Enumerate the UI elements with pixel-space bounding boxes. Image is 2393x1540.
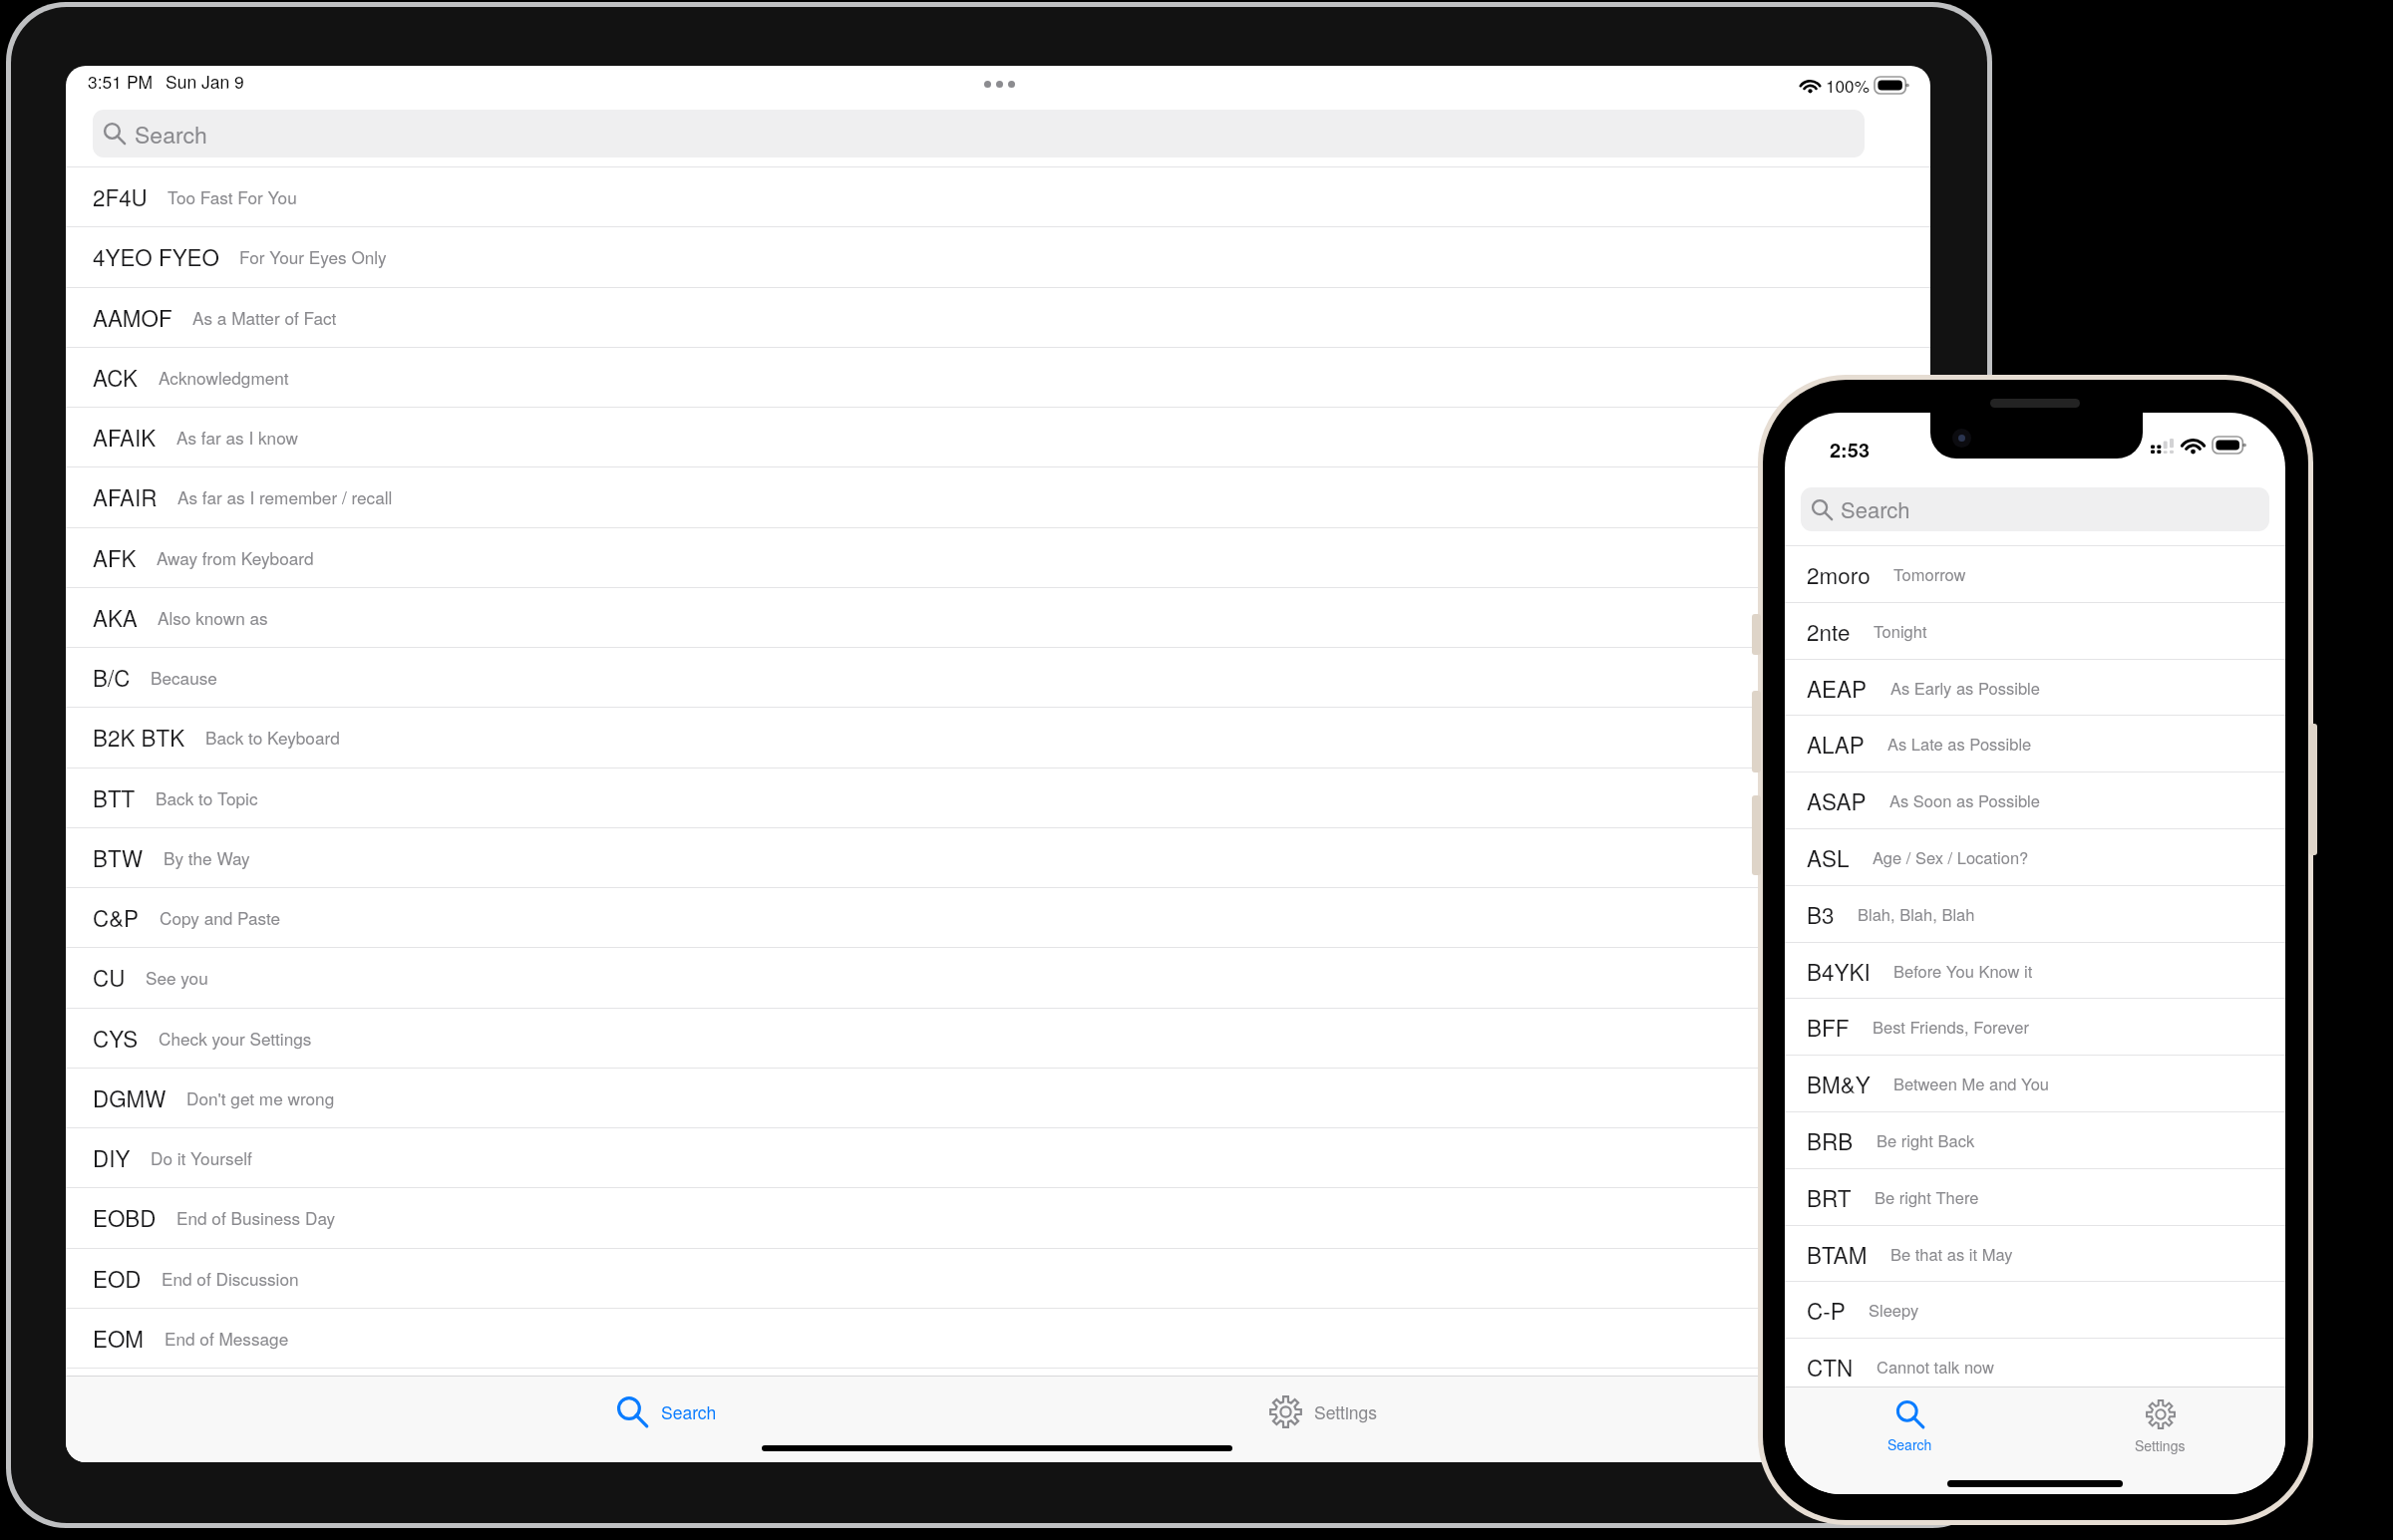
staticText: 2moro	[1807, 558, 1871, 590]
staticText: As Late as Possible	[1887, 732, 2032, 756]
button[interactable]: 2moro	[1785, 545, 2285, 602]
staticText: DGMW	[93, 1081, 167, 1113]
staticText: CYS	[93, 1022, 139, 1054]
button[interactable]: Search field	[1801, 487, 2269, 531]
staticText: Search	[135, 118, 207, 151]
staticText: Copy and Paste	[160, 905, 281, 930]
staticText: BM&Y	[1807, 1068, 1871, 1099]
staticText: B4YKI	[1807, 955, 1871, 987]
staticText: 2:53	[1830, 435, 1871, 463]
staticText: C&P	[93, 901, 140, 933]
button[interactable]: BRT	[1785, 1168, 2285, 1225]
button[interactable]: 4YEO FYEO	[66, 226, 1930, 286]
button[interactable]: AKA	[66, 587, 1930, 647]
button[interactable]: CTN	[1785, 1338, 2285, 1394]
button[interactable]: CU	[66, 947, 1930, 1007]
staticText: Tonight	[1874, 619, 1927, 643]
staticText: Away from Keyboard	[157, 545, 314, 570]
button[interactable]: BTT	[66, 768, 1930, 827]
button[interactable]: AFK	[66, 527, 1930, 587]
button[interactable]: BTW	[66, 827, 1930, 887]
staticText: EOD	[93, 1262, 142, 1294]
staticText: 100%	[1826, 73, 1870, 98]
staticText: Between Me and You	[1893, 1072, 2050, 1095]
button[interactable]: C-P	[1785, 1281, 2285, 1338]
staticText: Be right Back	[1877, 1128, 1975, 1152]
staticText: Too Fast For You	[168, 184, 297, 209]
button[interactable]: CYS	[66, 1008, 1930, 1068]
button[interactable]: ASAP	[1785, 771, 2285, 828]
staticText: BFF	[1807, 1011, 1850, 1043]
staticText: As Soon as Possible	[1889, 788, 2040, 812]
button[interactable]: AFAIR	[66, 466, 1930, 526]
button[interactable]: Settings	[2035, 1386, 2285, 1468]
button[interactable]: BTAM	[1785, 1225, 2285, 1282]
staticText: Be that as it May	[1890, 1242, 2013, 1266]
staticText: Because	[151, 665, 217, 690]
staticText: For Your Eyes Only	[239, 244, 387, 269]
staticText: ASL	[1807, 841, 1850, 873]
staticText: 2nte	[1807, 615, 1851, 647]
button[interactable]: B3	[1785, 885, 2285, 942]
staticText: AFK	[93, 541, 137, 573]
staticText: CTN	[1807, 1351, 1854, 1383]
staticText: AFAIK	[93, 421, 157, 453]
staticText: AKA	[93, 601, 138, 633]
staticText: Search	[1887, 1434, 1932, 1454]
button[interactable]: DIY	[66, 1127, 1930, 1187]
staticText: Do it Yourself	[151, 1145, 252, 1170]
staticText: Back to Topic	[156, 785, 258, 810]
button[interactable]: ASL	[1785, 828, 2285, 885]
staticText: 3:51 PM	[88, 69, 154, 94]
button[interactable]: Settings	[1229, 1378, 1459, 1441]
button[interactable]: EOBD	[66, 1187, 1930, 1247]
button[interactable]: ACK	[66, 347, 1930, 407]
button[interactable]: AFAIK	[66, 407, 1930, 466]
button[interactable]: Search	[1785, 1386, 2035, 1468]
button[interactable]: 2F4U	[66, 166, 1930, 226]
staticText: B/C	[93, 661, 131, 693]
button[interactable]: C&P	[66, 887, 1930, 947]
button[interactable]: ALAP	[1785, 715, 2285, 771]
staticText: End of Message	[165, 1326, 289, 1351]
staticText: Search	[1841, 493, 1910, 525]
button[interactable]: AAMOF	[66, 287, 1930, 347]
button[interactable]: AEAP	[1785, 659, 2285, 716]
button[interactable]: DGMW	[66, 1068, 1930, 1127]
staticText: AEAP	[1807, 672, 1868, 704]
staticText: Age / Sex / Location?	[1873, 845, 2029, 869]
staticText: Acknowledgment	[159, 365, 289, 390]
staticText: 4YEO FYEO	[93, 240, 219, 272]
staticText: Don't get me wrong	[186, 1085, 335, 1110]
button[interactable]: BFF	[1785, 998, 2285, 1055]
staticText: Check your Settings	[159, 1026, 312, 1051]
button[interactable]: B4YKI	[1785, 942, 2285, 999]
button[interactable]: EOD	[66, 1248, 1930, 1308]
button[interactable]: BRB	[1785, 1111, 2285, 1168]
button[interactable]: EOM	[66, 1308, 1930, 1368]
button[interactable]: B/C	[66, 647, 1930, 707]
staticText: Best Friends, Forever	[1873, 1015, 2029, 1039]
staticText: AFAIR	[93, 480, 158, 512]
button[interactable]: B2K BTK	[66, 707, 1930, 767]
staticText: C-P	[1807, 1294, 1846, 1326]
staticText: B3	[1807, 898, 1835, 930]
staticText: Sleepy	[1869, 1298, 1919, 1322]
staticText: ALAP	[1807, 728, 1865, 760]
staticText: As far as I remember / recall	[177, 484, 393, 509]
button[interactable]: Search	[577, 1378, 797, 1441]
staticText: Settings	[1314, 1399, 1378, 1424]
staticText: By the Way	[164, 845, 250, 870]
button[interactable]: BM&Y	[1785, 1055, 2285, 1111]
staticText: Blah, Blah, Blah	[1858, 902, 1975, 926]
staticText: End of Business Day	[176, 1205, 336, 1230]
staticText: AAMOF	[93, 301, 172, 333]
button[interactable]: Search field	[93, 110, 1865, 157]
button[interactable]: 2nte	[1785, 602, 2285, 659]
staticText: Search	[661, 1399, 717, 1424]
staticText: Cannot talk now	[1877, 1355, 1994, 1379]
staticText: BRB	[1807, 1124, 1854, 1156]
staticText: BTT	[93, 781, 136, 813]
staticText: Sun Jan 9	[166, 69, 244, 94]
staticText: DIY	[93, 1141, 131, 1173]
